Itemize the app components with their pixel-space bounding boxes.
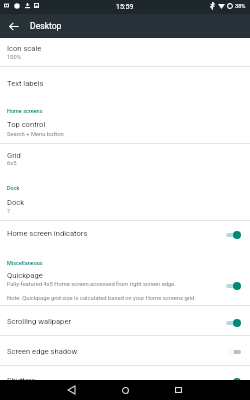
- staticText: 15:59: [116, 3, 134, 11]
- staticText: Screen edge shadow: [7, 347, 78, 356]
- staticText: Fully-featured 4x5 Home screen accessed …: [7, 281, 176, 288]
- staticText: 38%: [235, 3, 246, 10]
- staticText: 6x5: [7, 160, 17, 167]
- staticText: Miscellaneous: [7, 260, 43, 266]
- staticText: Dock: [7, 198, 25, 207]
- button[interactable]: Back: [2, 14, 26, 38]
- staticText: Top control: [7, 120, 46, 129]
- button[interactable]: Toggle on: [222, 315, 244, 329]
- staticText: 100%: [7, 54, 22, 61]
- staticText: Home screens: [7, 108, 43, 114]
- button[interactable]: [0, 116, 250, 145]
- staticText: Search + Menu button: [7, 131, 64, 138]
- staticText: Note: Quickpage grid size is calculated …: [7, 295, 196, 302]
- staticText: Quickpage: [7, 271, 43, 280]
- staticText: Grid: [7, 151, 21, 160]
- button[interactable]: [0, 221, 250, 248]
- button[interactable]: [0, 309, 250, 335]
- button[interactable]: [0, 336, 250, 367]
- staticText: Shutters: [7, 376, 36, 385]
- staticText: Dock: [7, 185, 20, 191]
- button[interactable]: Toggle on: [222, 278, 244, 292]
- staticText: Text labels: [7, 79, 44, 88]
- button[interactable]: [0, 68, 250, 96]
- button[interactable]: [0, 193, 250, 220]
- button[interactable]: Home: [115, 380, 135, 400]
- button[interactable]: [0, 268, 250, 308]
- button[interactable]: [0, 146, 250, 175]
- button[interactable]: [0, 38, 250, 67]
- button[interactable]: Toggle on: [222, 374, 244, 388]
- staticText: Desktop: [30, 21, 62, 31]
- button[interactable]: Back: [61, 380, 81, 400]
- button[interactable]: [0, 368, 250, 380]
- staticText: Icon scale: [7, 44, 42, 53]
- staticText: Scrolling wallpaper: [7, 317, 71, 326]
- staticText: 7: [7, 208, 11, 215]
- button[interactable]: Toggle on: [222, 227, 244, 241]
- button[interactable]: Toggle off: [222, 344, 244, 358]
- staticText: Home screen indicators: [7, 229, 88, 238]
- button[interactable]: Recents: [168, 380, 188, 400]
